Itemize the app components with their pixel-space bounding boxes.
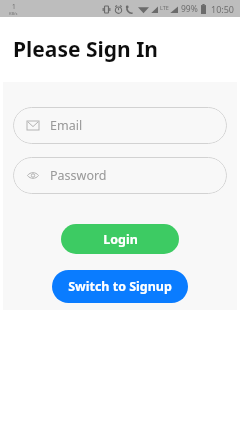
staticText: 10:50 xyxy=(211,3,235,15)
staticText: KB/s xyxy=(9,11,18,16)
staticText: LTE xyxy=(160,4,169,11)
staticText: Switch to Signup xyxy=(68,278,172,295)
staticText: Password xyxy=(50,167,107,184)
button[interactable]: Show password xyxy=(13,157,227,194)
button[interactable]: Switch to Signup xyxy=(52,270,188,303)
staticText: Login xyxy=(103,231,138,248)
other: Email xyxy=(27,121,39,130)
button[interactable]: Login xyxy=(61,224,179,254)
staticText: 1 xyxy=(12,2,16,11)
other: Show password xyxy=(27,171,39,180)
staticText: 99% xyxy=(181,3,198,15)
staticText: Please Sign In xyxy=(13,35,159,64)
button[interactable]: Email xyxy=(13,107,227,144)
staticText: Email xyxy=(50,117,83,134)
